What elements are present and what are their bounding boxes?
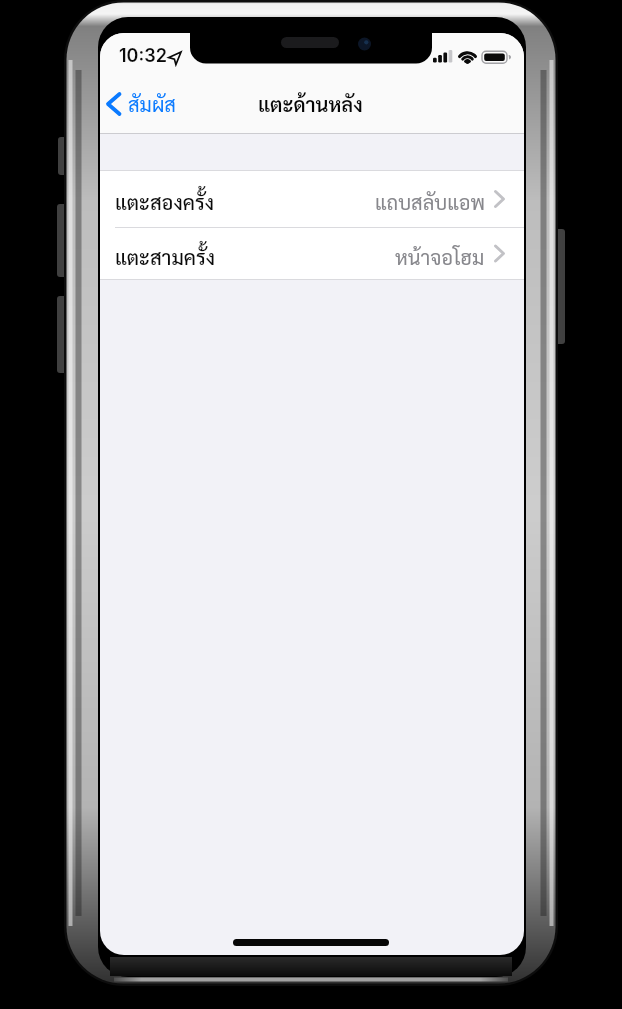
staticText: แถบสลับแอพ [375,189,485,215]
staticText: แตะด้านหลัง [258,91,363,117]
staticText: 10:32 [119,45,167,67]
button[interactable]: แตะสามครั้ง [100,228,524,280]
staticText: หน้าจอโฮม [395,244,485,270]
button[interactable]: แตะสองครั้ง [100,170,524,228]
staticText: แตะสองครั้ง [115,189,214,215]
staticText: แตะสามครั้ง [115,244,216,270]
staticText: สัมผัส [128,91,176,117]
button[interactable]: สัมผัส [102,85,190,123]
